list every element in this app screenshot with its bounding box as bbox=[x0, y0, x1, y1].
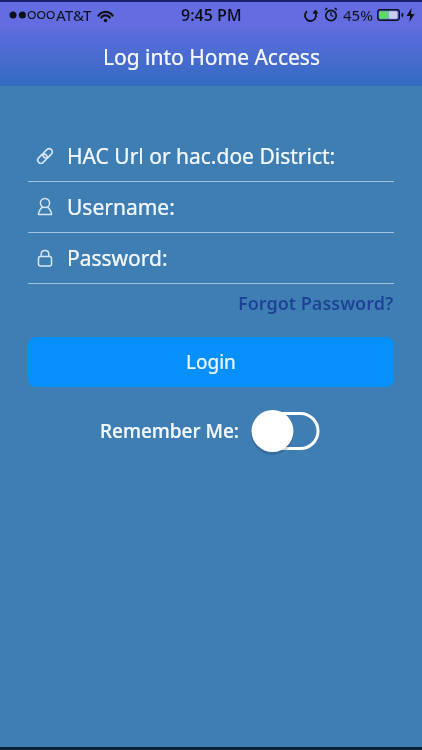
button[interactable]: Forgot Password? bbox=[238, 291, 394, 316]
button[interactable]: Login bbox=[28, 337, 394, 387]
button[interactable]: Password: bbox=[28, 233, 394, 283]
staticText: AT&T bbox=[56, 5, 92, 25]
staticText: 9:45 PM bbox=[181, 4, 242, 26]
staticText: Username: bbox=[67, 193, 175, 222]
button[interactable]: Username: bbox=[28, 182, 394, 232]
staticText: HAC Url or hac.doe District: bbox=[67, 142, 336, 171]
staticText: Password: bbox=[67, 244, 168, 273]
button[interactable]: HAC Url or hac.doe District: bbox=[28, 131, 394, 181]
button[interactable]: Remember Me: bbox=[28, 409, 394, 453]
staticText: Login bbox=[186, 349, 236, 375]
staticText: Remember Me: bbox=[100, 418, 239, 444]
staticText: Log into Home Access bbox=[103, 43, 320, 72]
staticText: 45% bbox=[343, 5, 373, 25]
